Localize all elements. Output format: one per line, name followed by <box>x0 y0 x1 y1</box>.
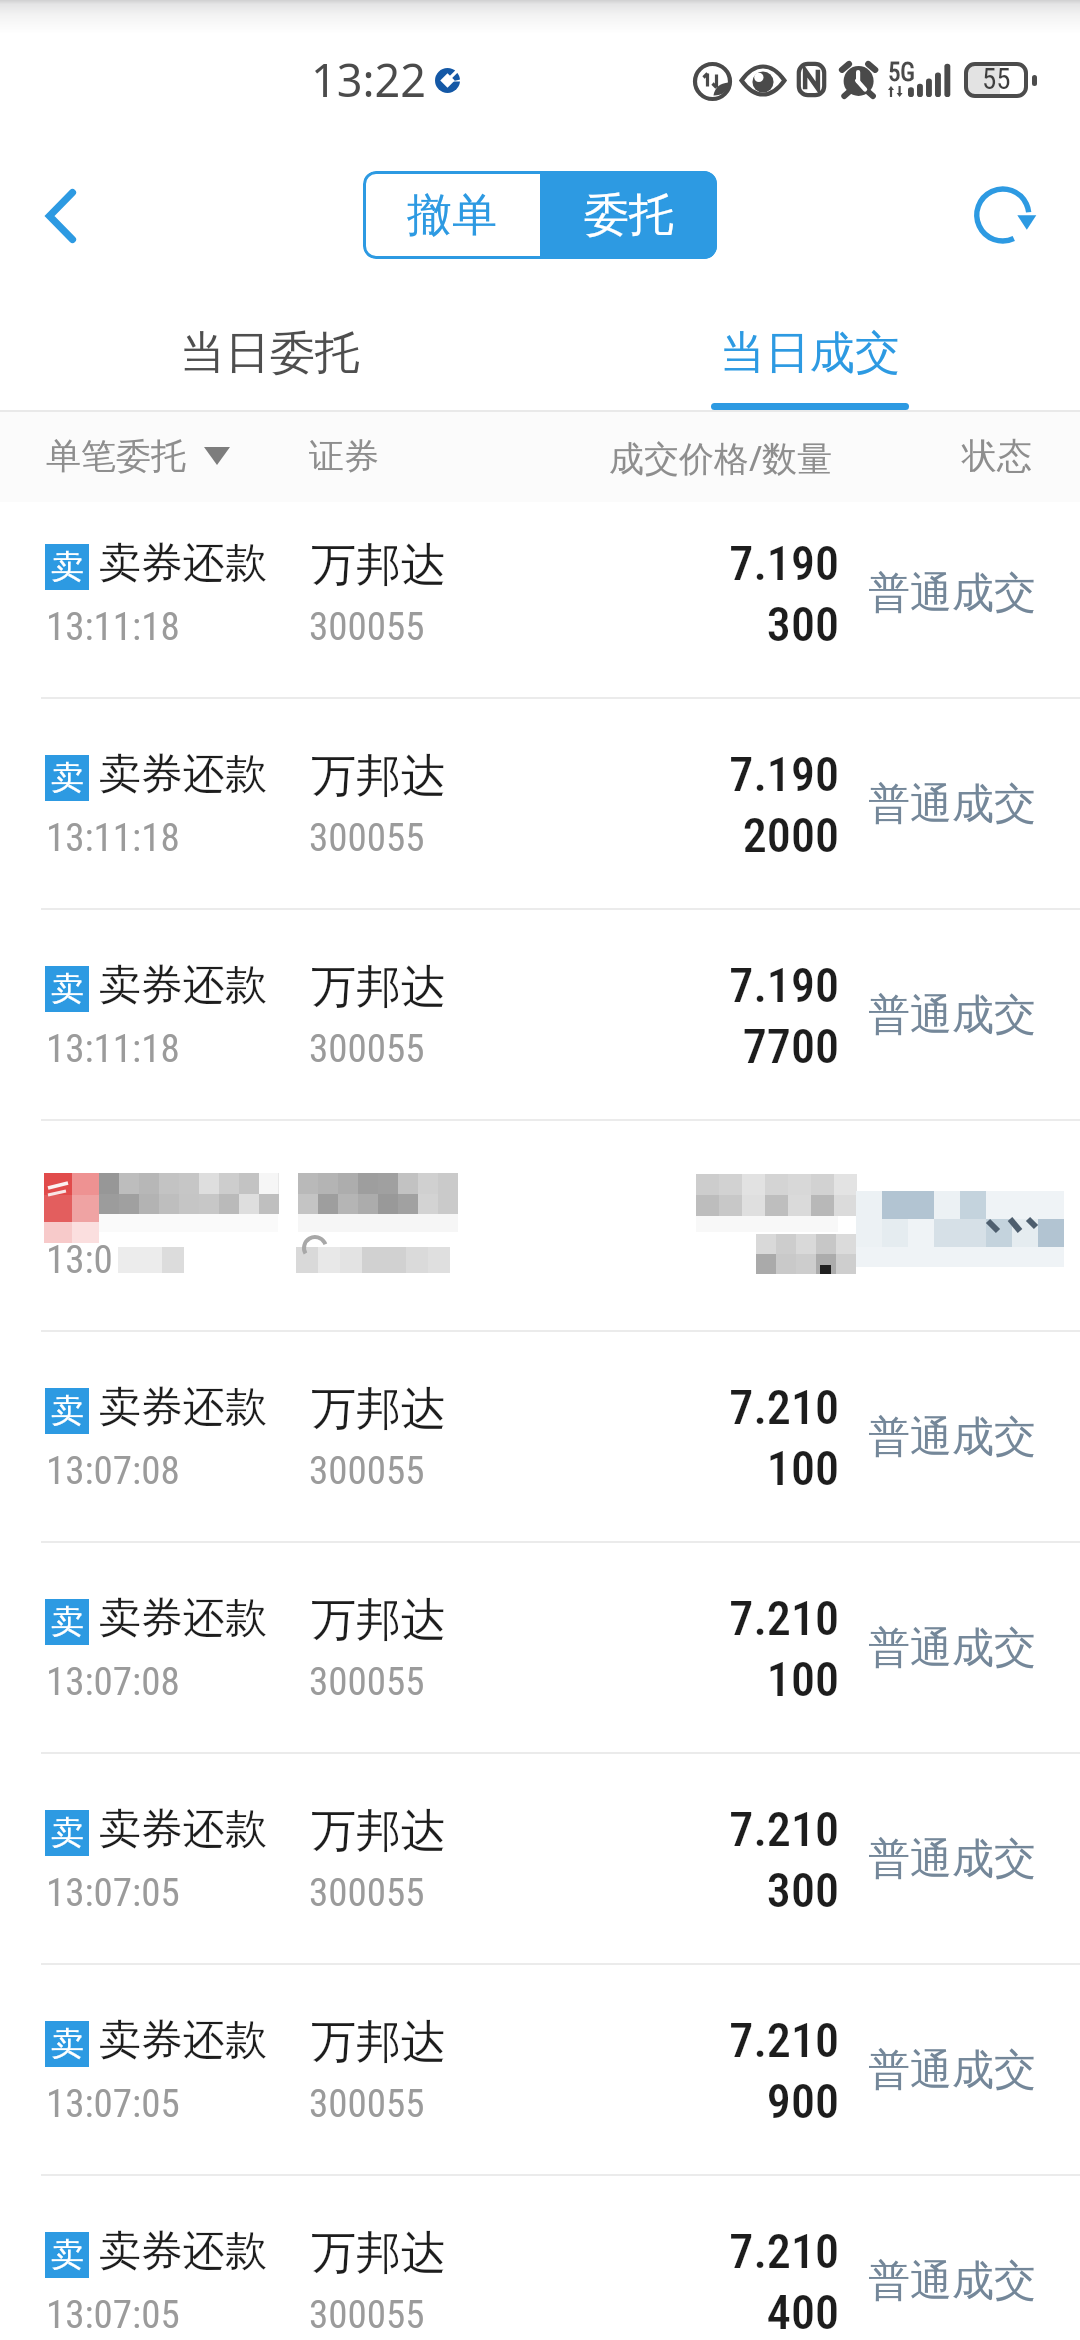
staticText: 300055 <box>309 1659 425 1705</box>
staticText: 成交价格/数量 <box>609 434 833 482</box>
staticText: 万邦达 <box>311 537 446 594</box>
button[interactable]: 委托 <box>540 171 717 259</box>
staticText: 13:22 <box>311 49 427 110</box>
staticText: 卖券还款 <box>99 2225 267 2278</box>
staticText: 300 <box>585 1862 839 1918</box>
staticText: 万邦达 <box>311 1803 446 1860</box>
button[interactable]: 单笔委托 <box>30 416 250 496</box>
staticText: 普通成交 <box>868 1622 1036 1675</box>
staticText: 7.210 <box>585 2012 839 2068</box>
staticText: 300055 <box>309 1870 425 1916</box>
staticText: 当日委托 <box>180 325 360 382</box>
staticText: 卖券还款 <box>99 748 267 801</box>
staticText: 委托 <box>584 187 674 244</box>
staticText: 7700 <box>585 1018 839 1074</box>
staticText: 300055 <box>309 604 425 650</box>
staticText: 13:11:18 <box>46 604 180 650</box>
staticText: 万邦达 <box>311 1592 446 1649</box>
staticText: 2000 <box>585 807 839 863</box>
staticText: 13:11:18 <box>46 815 180 861</box>
staticText: 7.210 <box>585 2223 839 2279</box>
staticText: 万邦达 <box>311 959 446 1016</box>
staticText: 卖券还款 <box>99 1381 267 1434</box>
staticText: 300 <box>585 596 839 652</box>
staticText: 卖 <box>51 2023 84 2065</box>
button[interactable]: Back <box>15 170 107 262</box>
staticText: 13:07:05 <box>46 2081 180 2127</box>
staticText: 7.190 <box>585 746 839 802</box>
staticText: 卖 <box>51 2234 84 2276</box>
staticText: 卖 <box>51 546 84 588</box>
staticText: 万邦达 <box>311 2225 446 2282</box>
button[interactable]: Refresh <box>958 169 1050 261</box>
button[interactable]: 卖 <box>0 2176 1080 2340</box>
staticText: 400 <box>585 2284 839 2340</box>
staticText: 卖 <box>51 1601 84 1643</box>
staticText: 13:07:05 <box>46 2292 180 2338</box>
button[interactable]: 卖 <box>0 1754 1080 1965</box>
staticText: 卖 <box>51 968 84 1010</box>
staticText: 普通成交 <box>868 2044 1036 2097</box>
button[interactable]: 卖 <box>0 1332 1080 1543</box>
staticText: 普通成交 <box>868 2255 1036 2308</box>
staticText: 13:07:08 <box>46 1659 180 1705</box>
staticText: 证券 <box>309 434 379 478</box>
staticText: 卖 <box>51 1812 84 1854</box>
staticText: 7.210 <box>585 1801 839 1857</box>
button[interactable]: 卖 <box>0 910 1080 1121</box>
staticText: 13:0 <box>46 1237 113 1283</box>
button[interactable]: 卖 <box>0 1965 1080 2176</box>
staticText: 300055 <box>309 1026 425 1072</box>
staticText: 卖券还款 <box>99 2014 267 2067</box>
staticText: 万邦达 <box>311 748 446 805</box>
staticText: 普通成交 <box>868 989 1036 1042</box>
staticText: 卖券还款 <box>99 959 267 1012</box>
button[interactable]: 13:0 <box>0 1121 1080 1332</box>
staticText: 900 <box>585 2073 839 2129</box>
staticText: 300055 <box>309 815 425 861</box>
staticText: 7.190 <box>585 535 839 591</box>
staticText: 普通成交 <box>868 778 1036 831</box>
staticText: 卖 <box>51 1390 84 1432</box>
button[interactable]: 卖 <box>0 488 1080 699</box>
button[interactable]: 当日成交 <box>540 290 1080 410</box>
staticText: 13:07:08 <box>46 1448 180 1494</box>
staticText: 普通成交 <box>868 1833 1036 1886</box>
button[interactable]: 卖 <box>0 1543 1080 1754</box>
staticText: 100 <box>585 1651 839 1707</box>
staticText: 万邦达 <box>311 1381 446 1438</box>
staticText: 100 <box>585 1440 839 1496</box>
button[interactable]: 当日委托 <box>0 290 540 410</box>
staticText: 300055 <box>309 2081 425 2127</box>
staticText: 卖 <box>51 757 84 799</box>
staticText: 卖券还款 <box>99 1592 267 1645</box>
staticText: 单笔委托 <box>46 434 186 478</box>
staticText: 7.210 <box>585 1590 839 1646</box>
staticText: 状态 <box>962 434 1032 478</box>
button[interactable]: 卖 <box>0 699 1080 910</box>
staticText: 普通成交 <box>868 567 1036 620</box>
staticText: 卖券还款 <box>99 537 267 590</box>
staticText: 普通成交 <box>868 1411 1036 1464</box>
staticText: 5G <box>888 58 916 87</box>
staticText: 7.190 <box>585 957 839 1013</box>
staticText: 撤单 <box>407 187 497 244</box>
button[interactable]: 撤单 <box>363 171 540 259</box>
staticText: 万邦达 <box>311 2014 446 2071</box>
staticText: 13:11:18 <box>46 1026 180 1072</box>
staticText: 7.210 <box>585 1379 839 1435</box>
staticText: 300055 <box>309 1448 425 1494</box>
staticText: 卖券还款 <box>99 1803 267 1856</box>
staticText: 13:07:05 <box>46 1870 180 1916</box>
staticText: 300055 <box>309 2292 425 2338</box>
staticText: 55 <box>982 62 1011 96</box>
staticText: 当日成交 <box>720 325 900 382</box>
